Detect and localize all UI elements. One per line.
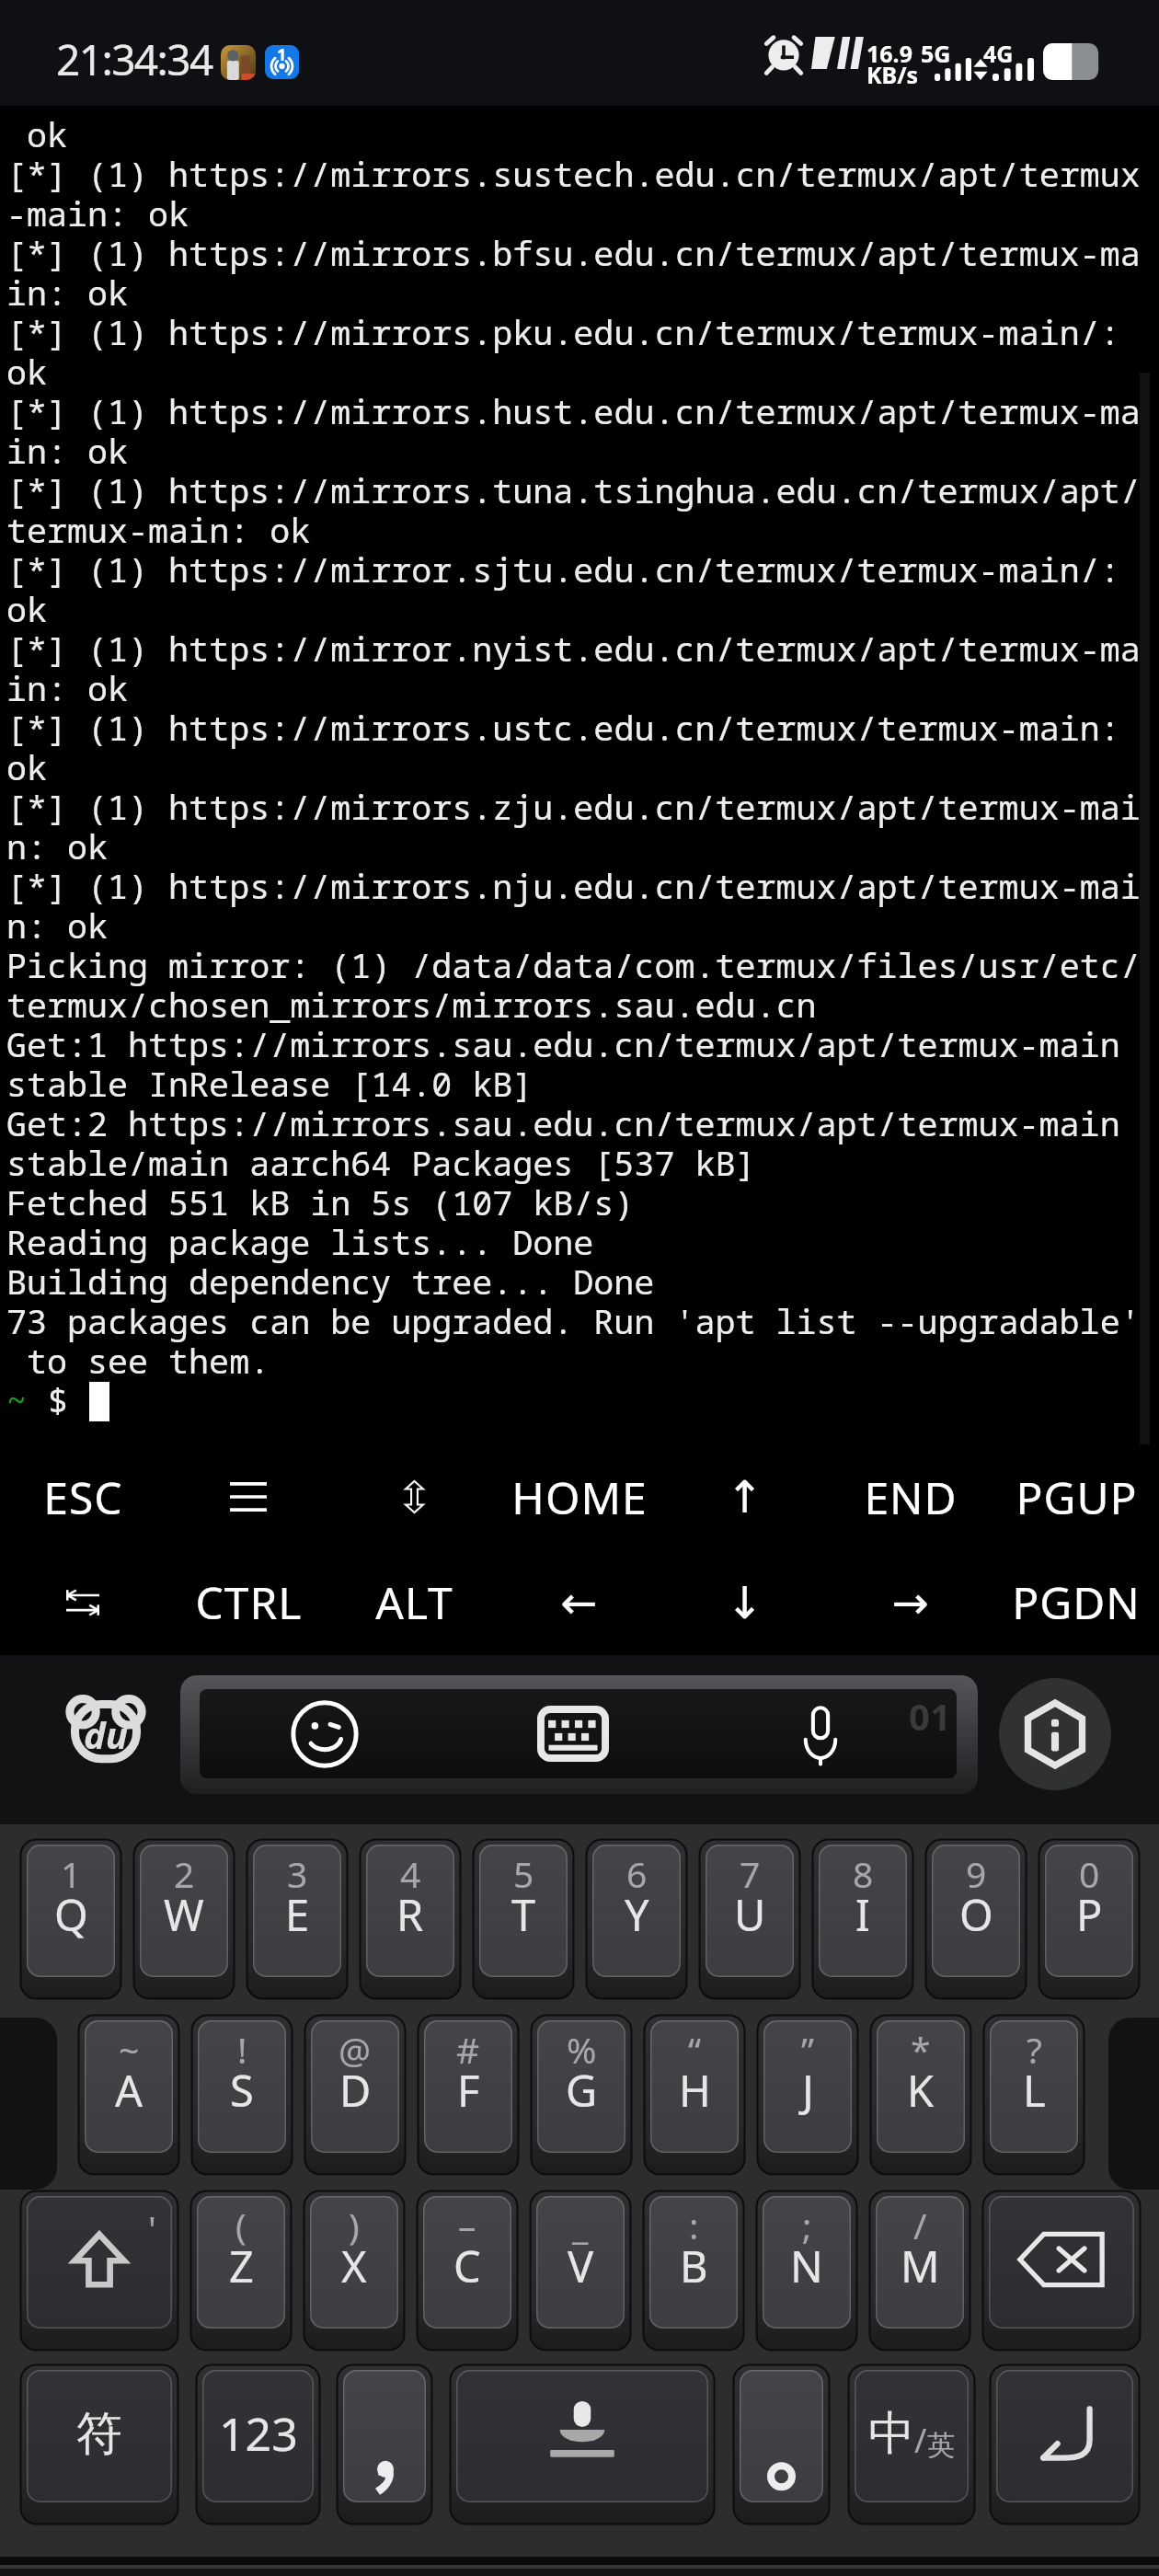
staticText: → — [891, 1577, 930, 1628]
button[interactable]: space — [450, 2364, 715, 2524]
button[interactable]: CTRL — [166, 1549, 331, 1655]
staticText: 1 — [61, 1849, 82, 1898]
staticText: ; — [802, 2201, 812, 2249]
staticText: / — [913, 2201, 927, 2249]
staticText: L — [1023, 2061, 1046, 2120]
staticText: _ — [572, 2201, 589, 2249]
staticText: ( — [235, 2201, 247, 2249]
button[interactable]: PGDN — [993, 1549, 1159, 1655]
button[interactable]: 2 — [133, 1839, 235, 1999]
staticText: 1 — [277, 45, 287, 66]
staticText: 英 — [927, 2428, 955, 2463]
staticText: HOME — [511, 1467, 648, 1527]
button[interactable]: ” — [757, 2015, 858, 2175]
button[interactable]: @ — [304, 2015, 406, 2175]
staticText: ~ — [6, 1377, 28, 1423]
staticText: ↑ — [726, 1471, 764, 1523]
button[interactable]: ; — [756, 2191, 857, 2351]
staticText: R — [396, 1885, 424, 1944]
button[interactable]: Emoji — [281, 1689, 369, 1778]
button[interactable]: HOME — [497, 1444, 662, 1549]
button[interactable]: 4 — [360, 1839, 461, 1999]
staticText: 5G — [921, 38, 951, 69]
button[interactable]: ← — [497, 1549, 662, 1655]
staticText: 符 — [76, 2405, 122, 2463]
button[interactable]: END — [828, 1444, 993, 1549]
button[interactable]: TAB — [0, 1549, 166, 1655]
staticText: ← — [560, 1577, 599, 1628]
button[interactable]: / — [869, 2191, 970, 2351]
staticText: CTRL — [195, 1572, 303, 1632]
staticText: : — [689, 2201, 699, 2249]
staticText: ok [*] (1) https://mirrors.sustech.edu.c… — [6, 111, 1141, 1384]
staticText: G — [566, 2061, 598, 2120]
staticText: U — [734, 1885, 766, 1944]
button[interactable]: backspace — [982, 2191, 1141, 2351]
button[interactable]: 8 — [812, 1839, 913, 1999]
button[interactable]: 0 — [1039, 1839, 1140, 1999]
staticText: “ — [688, 2025, 702, 2074]
button[interactable]: 7 — [699, 1839, 800, 1999]
button[interactable]: 9 — [925, 1839, 1027, 1999]
staticText: Q — [54, 1885, 88, 1944]
button[interactable]: % — [531, 2015, 632, 2175]
button[interactable]: ~ — [78, 2015, 179, 2175]
button[interactable]: ALT — [331, 1549, 497, 1655]
button[interactable]: ) — [304, 2191, 405, 2351]
staticText: $ — [28, 1377, 89, 1423]
button[interactable]: – — [417, 2191, 518, 2351]
staticText: 3 — [287, 1849, 308, 1898]
button[interactable]: 3 — [247, 1839, 348, 1999]
button[interactable]: 1 — [20, 1839, 121, 1999]
button[interactable]: enter — [990, 2364, 1140, 2524]
button[interactable]: ↓ — [662, 1549, 828, 1655]
staticText: Z — [229, 2237, 254, 2295]
button[interactable]: num — [196, 2364, 320, 2524]
staticText: ' — [148, 2203, 156, 2252]
button[interactable]: comma — [337, 2364, 432, 2524]
button[interactable]: ( — [190, 2191, 292, 2351]
staticText: KB/s — [866, 59, 919, 90]
staticText: I — [855, 1885, 870, 1944]
staticText: 5 — [513, 1849, 534, 1898]
staticText: 7 — [740, 1849, 761, 1898]
staticText: N — [790, 2237, 823, 2295]
staticText: ~ — [119, 2025, 140, 2074]
button[interactable]: “ — [644, 2015, 745, 2175]
button[interactable]: UPDOWN — [331, 1444, 497, 1549]
button[interactable]: ESC — [0, 1444, 166, 1549]
button[interactable]: 5 — [473, 1839, 574, 1999]
button[interactable]: shift — [20, 2191, 178, 2351]
staticText: 4G — [983, 38, 1014, 69]
button[interactable]: → — [828, 1549, 993, 1655]
button[interactable]: ? — [983, 2015, 1084, 2175]
button[interactable]: * — [870, 2015, 971, 2175]
button[interactable]: Input settings — [999, 1678, 1111, 1790]
staticText: ) — [349, 2201, 360, 2249]
staticText: 中 — [868, 2405, 914, 2463]
staticText: D — [339, 2061, 372, 2120]
staticText: O — [959, 1885, 993, 1944]
staticText: PGUP — [1016, 1467, 1138, 1527]
button[interactable]: : — [643, 2191, 744, 2351]
button[interactable]: # — [418, 2015, 519, 2175]
staticText: 0 — [1079, 1849, 1100, 1898]
button[interactable]: MENU — [166, 1444, 331, 1549]
staticText: 01 — [909, 1691, 951, 1741]
button[interactable]: sym — [20, 2364, 178, 2524]
button[interactable]: PGUP — [993, 1444, 1159, 1549]
button[interactable]: _ — [530, 2191, 631, 2351]
staticText: ALT — [375, 1572, 453, 1632]
button[interactable]: lang — [848, 2364, 975, 2524]
button[interactable]: 6 — [586, 1839, 687, 1999]
button[interactable]: ! — [191, 2015, 293, 2175]
staticText: 4 — [400, 1849, 421, 1898]
button[interactable]: period — [733, 2364, 830, 2524]
staticText: ↓ — [726, 1577, 764, 1628]
button[interactable]: ↑ — [662, 1444, 828, 1549]
button[interactable]: Voice input — [776, 1689, 865, 1778]
button[interactable]: Keyboard layout — [529, 1689, 617, 1778]
staticText: F — [457, 2061, 480, 2120]
staticText: 2 — [174, 1849, 195, 1898]
button[interactable]: Baidu IME — [66, 1694, 145, 1764]
